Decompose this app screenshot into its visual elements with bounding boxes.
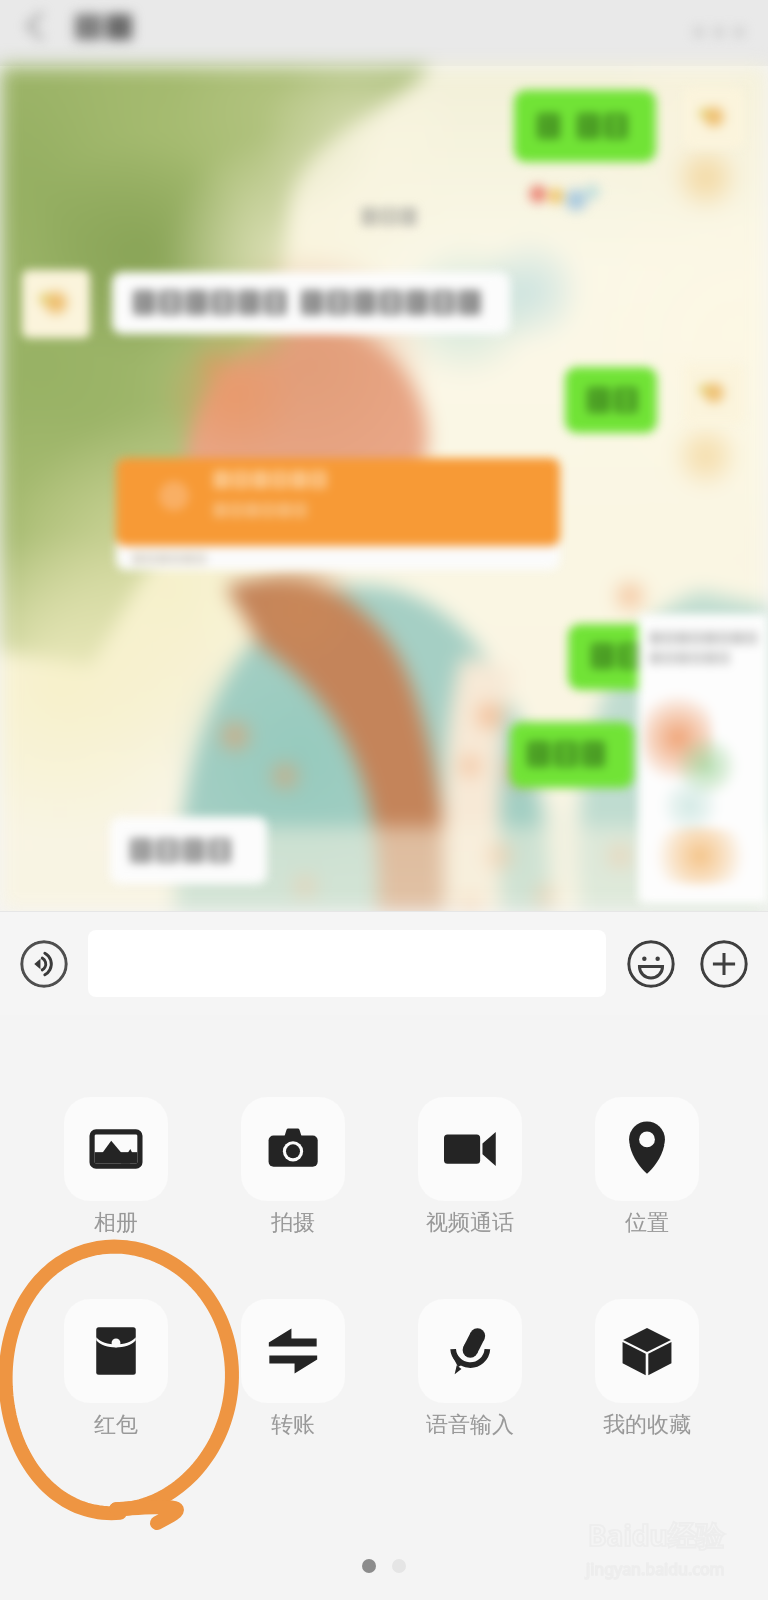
staticText: 语音输入 [426,1411,514,1439]
button[interactable] [66,8,152,58]
button[interactable]: 语音输入 [418,1299,522,1439]
button[interactable]: 视频通话 [418,1097,522,1237]
staticText: 我的收藏 [603,1411,691,1439]
staticText: 红包 [94,1411,138,1439]
button[interactable]: More functions [700,940,748,988]
button[interactable]: Emoji [627,940,675,988]
button[interactable]: 转账 [241,1299,345,1439]
staticText: 拍摄 [271,1209,315,1237]
button[interactable]: 红包 [64,1299,168,1439]
staticText: 转账 [271,1411,315,1439]
button[interactable]: 位置 [595,1097,699,1237]
button[interactable]: 拍摄 [241,1097,345,1237]
button[interactable]: Back [8,8,58,58]
staticText: 相册 [94,1209,138,1237]
button[interactable]: 相册 [64,1097,168,1237]
button[interactable]: Voice message [20,940,68,988]
staticText: 位置 [625,1209,669,1237]
staticText: 视频通话 [426,1209,514,1237]
button[interactable]: 我的收藏 [595,1299,699,1439]
button[interactable]: More options [698,5,754,61]
